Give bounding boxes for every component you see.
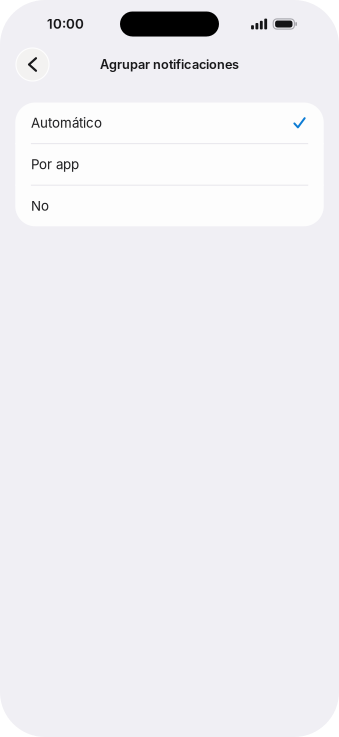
staticText: No: [31, 198, 49, 214]
button[interactable]: Back: [16, 48, 49, 81]
staticText: 10:00: [47, 16, 84, 32]
staticText: Por app: [31, 156, 79, 172]
staticText: Agrupar notificaciones: [100, 57, 239, 72]
staticText: Automático: [31, 115, 102, 131]
button[interactable]: Por app: [15, 144, 324, 185]
button[interactable]: No: [15, 186, 324, 226]
button[interactable]: Automático: [15, 102, 324, 143]
